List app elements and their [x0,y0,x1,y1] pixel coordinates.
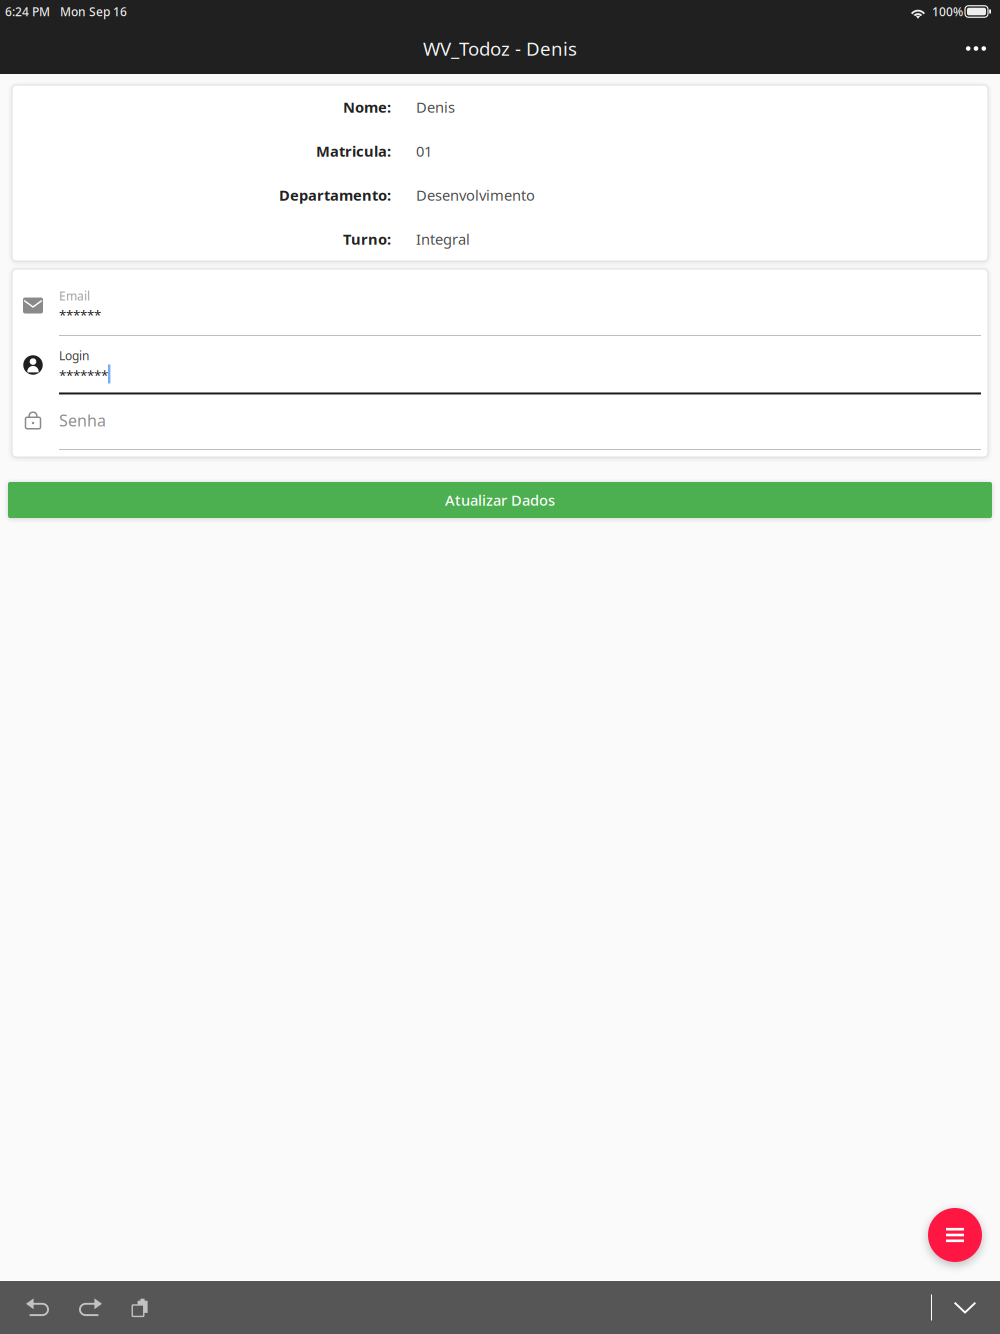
button[interactable]: Hide keyboard [932,1280,998,1334]
staticText: ******* [59,366,108,384]
button[interactable]: Undo [12,1280,64,1334]
staticText: Atualizar Dados [445,490,555,510]
staticText: Integral [416,229,470,249]
staticText: 6:24 PM [5,3,50,19]
staticText: Departamento: [279,185,391,205]
staticText: Senha [59,410,106,431]
staticText: Nome: [343,97,391,117]
staticText: 100% [932,3,963,19]
button[interactable]: Senha [12,394,988,457]
button[interactable]: Menu [928,1208,982,1262]
button[interactable]: Login [12,336,988,394]
staticText: WV_Todoz - Denis [423,36,577,61]
staticText: Matricula: [316,141,391,161]
staticText: Email [59,288,90,304]
staticText: Denis [416,97,455,117]
staticText: Desenvolvimento [416,185,535,205]
staticText: Turno: [343,229,391,249]
button[interactable]: Email [12,269,988,336]
button[interactable]: Paste [116,1280,168,1334]
button[interactable]: Redo [64,1280,116,1334]
staticText: 01 [416,141,432,161]
staticText: ****** [59,306,101,324]
staticText: Login [59,347,89,363]
staticText: Mon Sep 16 [60,3,127,19]
button[interactable]: Atualizar Dados [8,482,992,518]
button[interactable]: More options [952,23,1000,74]
